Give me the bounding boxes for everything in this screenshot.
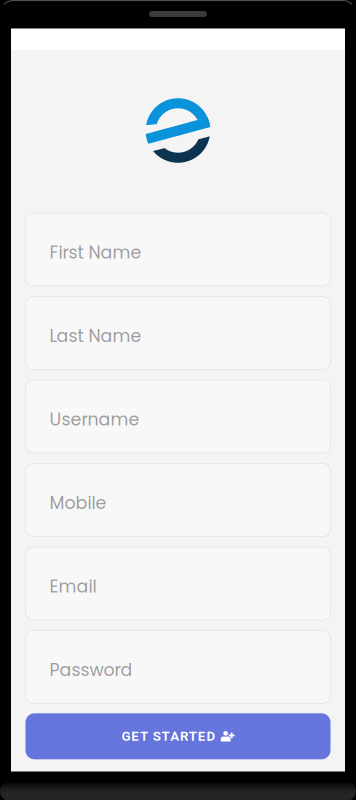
button[interactable]: Email: [25, 547, 330, 620]
staticText: Password: [49, 658, 132, 682]
staticText: Mobile: [49, 491, 106, 515]
staticText: Username: [49, 407, 139, 432]
button[interactable]: Username: [25, 380, 330, 453]
button[interactable]: Password: [25, 630, 330, 703]
staticText: Last Name: [49, 324, 141, 348]
staticText: GET STARTED: [121, 728, 215, 744]
staticText: Email: [49, 574, 96, 599]
staticText: First Name: [49, 240, 141, 265]
button[interactable]: First Name: [25, 213, 330, 286]
button[interactable]: Last Name: [25, 296, 330, 369]
button[interactable]: GET STARTED: [25, 713, 330, 759]
button[interactable]: Mobile: [25, 463, 330, 536]
